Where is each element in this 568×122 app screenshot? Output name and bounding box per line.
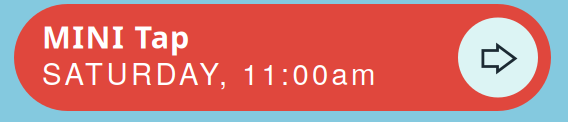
staticText: MINI Tap [42, 16, 189, 57]
staticText: SATURDAY, 11:00am [42, 51, 375, 93]
button[interactable]: MINI Tap [14, 4, 551, 111]
